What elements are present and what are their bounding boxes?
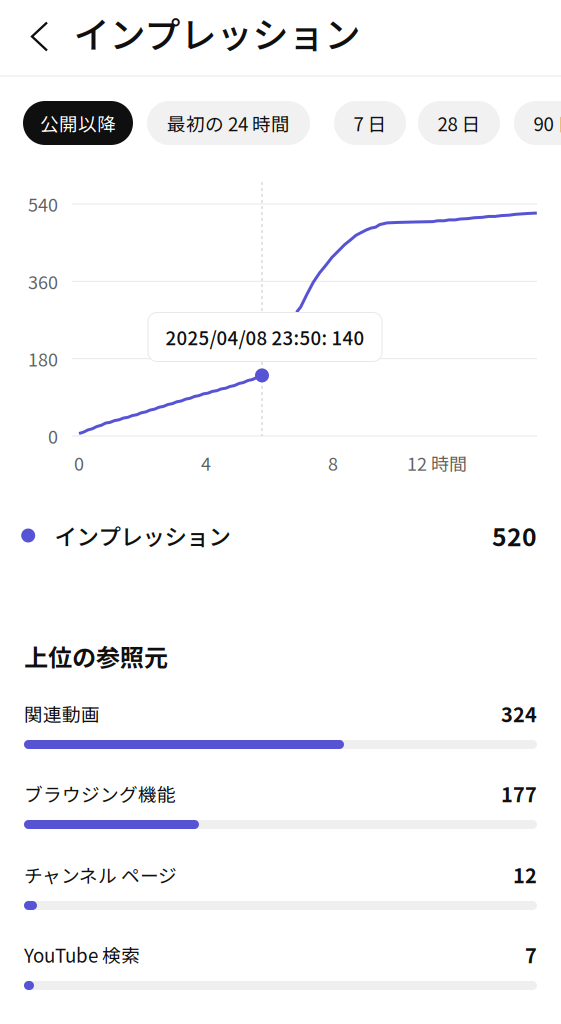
- staticText: チャンネル ページ: [24, 861, 177, 888]
- button[interactable]: 最初の 24 時間: [147, 101, 310, 145]
- staticText: 180: [28, 346, 58, 372]
- button[interactable]: YouTube 検索: [24, 940, 537, 990]
- staticText: 関連動画: [24, 700, 100, 727]
- staticText: 0: [48, 423, 58, 449]
- button[interactable]: 戻る: [17, 14, 61, 58]
- staticText: YouTube 検索: [24, 941, 140, 968]
- button[interactable]: 7 日: [334, 101, 406, 145]
- staticText: 8: [328, 450, 338, 476]
- staticText: 90 日: [533, 109, 561, 136]
- button[interactable]: 公開以降: [23, 101, 133, 145]
- button[interactable]: チャンネル ページ: [24, 860, 537, 910]
- staticText: 4: [201, 450, 211, 476]
- staticText: 177: [501, 779, 537, 808]
- staticText: ブラウジング機能: [24, 780, 176, 807]
- button[interactable]: 28 日: [418, 101, 500, 145]
- staticText: インプレッション: [54, 519, 230, 552]
- button[interactable]: ブラウジング機能: [24, 779, 537, 829]
- staticText: 2025/04/08 23:50: 140: [165, 323, 364, 350]
- staticText: 12: [513, 860, 537, 889]
- button[interactable]: インプレッション: [73, 6, 360, 58]
- staticText: 520: [492, 518, 537, 553]
- staticText: 公開以降: [40, 109, 116, 136]
- staticText: 360: [28, 268, 58, 294]
- staticText: 12 時間: [407, 450, 467, 476]
- staticText: 7: [525, 940, 537, 969]
- staticText: 7 日: [353, 109, 386, 136]
- staticText: 0: [74, 450, 84, 476]
- staticText: 324: [501, 699, 537, 728]
- staticText: 上位の参照元: [24, 639, 168, 673]
- button[interactable]: 90 日: [514, 101, 561, 145]
- staticText: インプレッション: [73, 6, 360, 58]
- button[interactable]: 関連動画: [24, 699, 537, 749]
- staticText: 最初の 24 時間: [167, 109, 290, 136]
- staticText: 28 日: [437, 109, 480, 136]
- staticText: 540: [28, 191, 58, 217]
